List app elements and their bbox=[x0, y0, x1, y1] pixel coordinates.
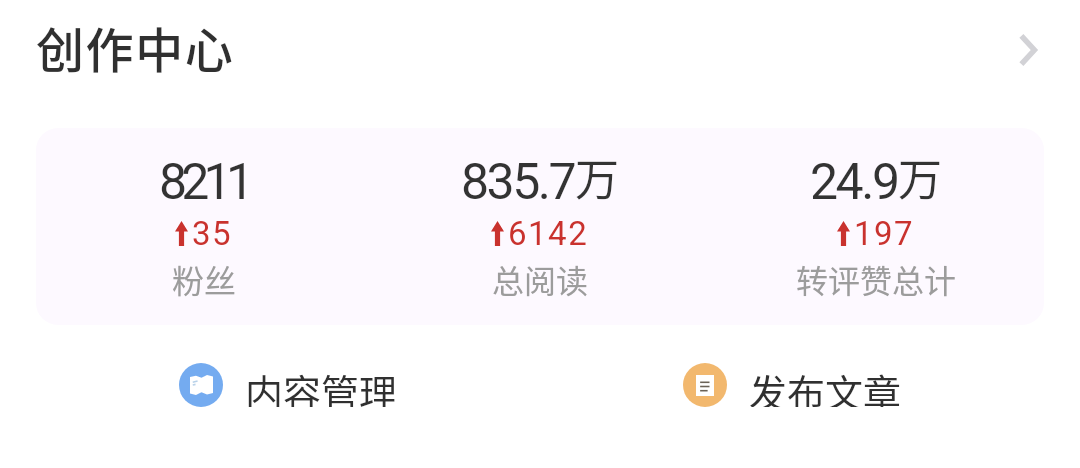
staticText: 发布文章 bbox=[749, 363, 902, 407]
button[interactable]: 8211 bbox=[36, 128, 372, 325]
staticText: 197 bbox=[854, 214, 915, 253]
button[interactable]: 内容管理 bbox=[179, 363, 398, 407]
staticText: 总阅读 bbox=[492, 256, 589, 302]
button[interactable]: 24.9 bbox=[708, 128, 1044, 325]
staticText: 6142 bbox=[508, 214, 589, 253]
staticText: 万 bbox=[575, 145, 619, 205]
button[interactable]: 835.7 bbox=[372, 128, 708, 325]
staticText: 粉丝 bbox=[172, 256, 237, 302]
staticText: 创作中心 bbox=[36, 12, 235, 82]
staticText: 35 bbox=[192, 214, 233, 253]
staticText: 万 bbox=[898, 145, 942, 205]
staticText: 8211 bbox=[159, 153, 249, 212]
staticText: 24.9 bbox=[810, 153, 898, 212]
button[interactable]: 创作中心 bbox=[0, 0, 1080, 94]
staticText: 835.7 bbox=[461, 153, 575, 212]
button[interactable]: Open creator center bbox=[1006, 28, 1050, 72]
staticText: 转评赞总计 bbox=[796, 256, 957, 302]
button[interactable]: 发布文章 bbox=[683, 363, 902, 407]
staticText: 内容管理 bbox=[245, 363, 398, 407]
